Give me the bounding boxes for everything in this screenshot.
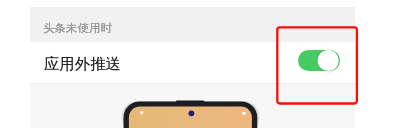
button[interactable]: 应用外推送 (30, 42, 355, 83)
staticText: 应用外推送 (44, 54, 121, 73)
staticText: 头条未使用时 (43, 21, 112, 35)
staticText: 应用外推送 (44, 54, 121, 73)
staticText: 头条未使用时 (43, 21, 112, 35)
button[interactable]: 应用外推送开关 (298, 49, 340, 72)
